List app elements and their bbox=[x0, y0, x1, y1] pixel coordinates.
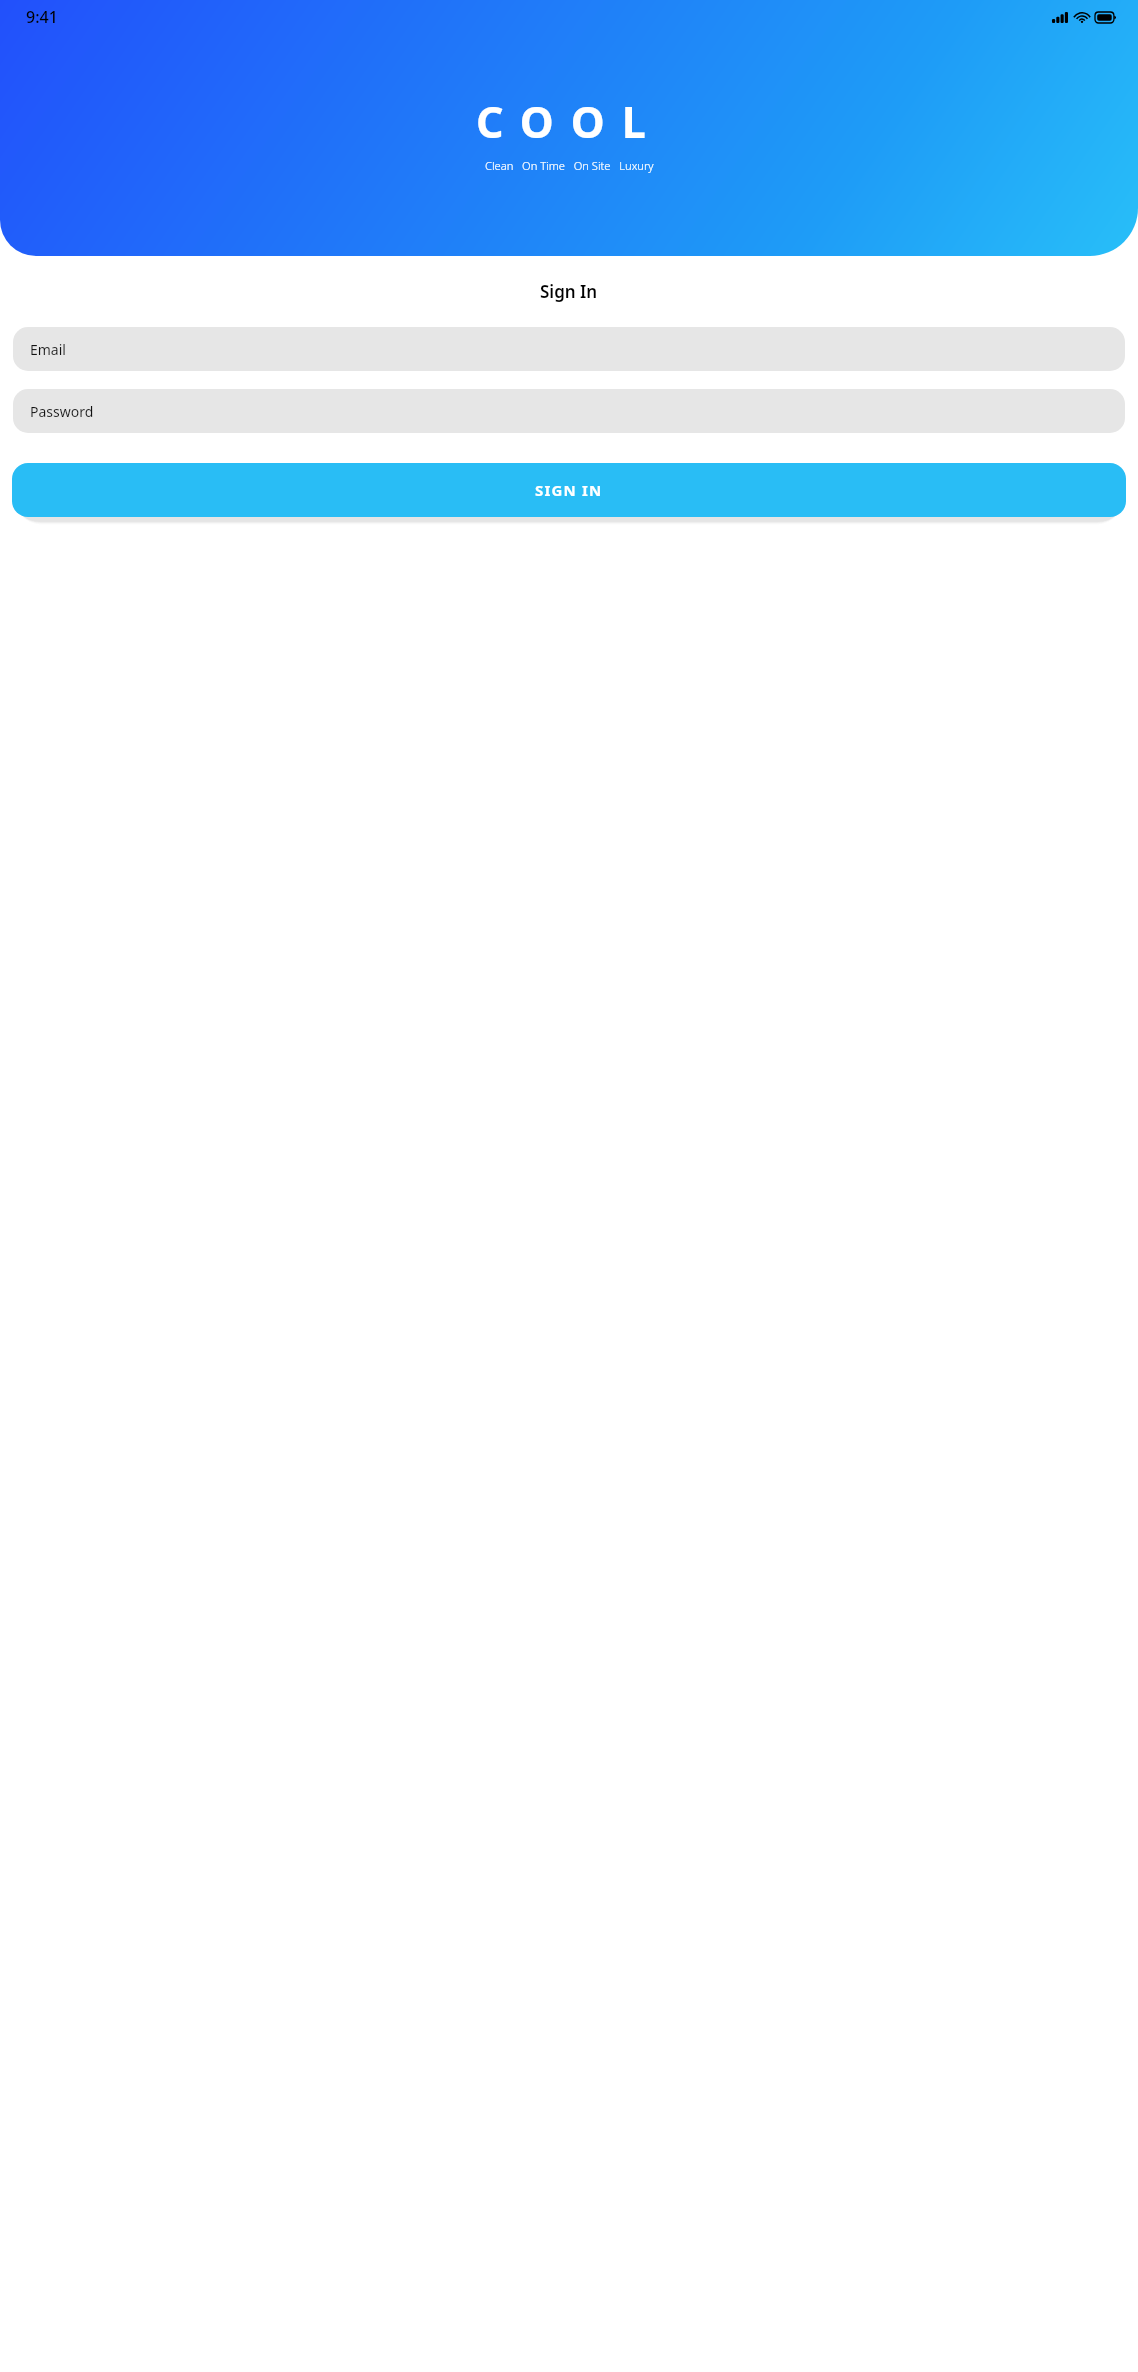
staticText: SIGN IN bbox=[535, 480, 603, 500]
staticText: Password bbox=[30, 402, 94, 421]
button[interactable]: Email bbox=[13, 327, 1125, 371]
staticText: Clean On Time On Site Luxury bbox=[485, 158, 654, 173]
button[interactable]: Password bbox=[13, 389, 1125, 433]
staticText: COOL bbox=[476, 92, 663, 151]
staticText: Sign In bbox=[540, 280, 598, 303]
button[interactable]: SIGN IN bbox=[12, 463, 1126, 517]
staticText: 9:41 bbox=[26, 6, 58, 28]
staticText: Email bbox=[30, 340, 66, 359]
